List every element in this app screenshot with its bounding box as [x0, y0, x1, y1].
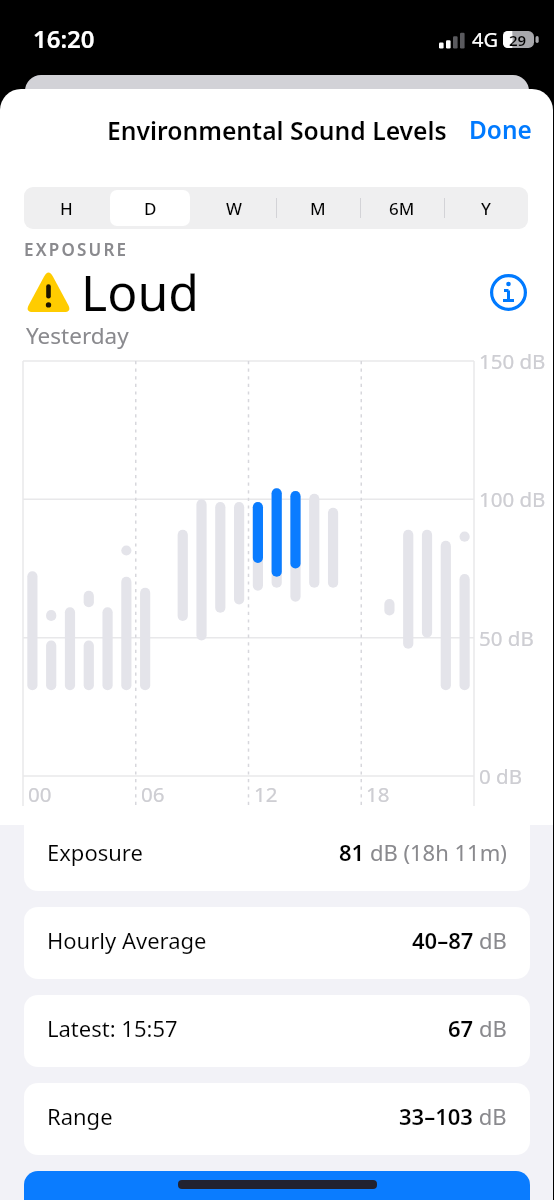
- staticText: Y: [481, 197, 491, 220]
- staticText: Hourly Average: [47, 925, 207, 955]
- staticText: EXPOSURE: [24, 238, 129, 261]
- button[interactable]: Latest: 15:57: [24, 995, 530, 1067]
- staticText: Loud: [81, 258, 200, 314]
- staticText: 06: [141, 780, 165, 808]
- staticText: 67 dB: [448, 1013, 507, 1043]
- staticText: 40–87 dB: [412, 925, 507, 955]
- button[interactable]: Information: [490, 274, 527, 311]
- staticText: Environmental Sound Levels: [107, 114, 447, 148]
- staticText: 4G: [472, 26, 498, 53]
- staticText: 12: [254, 780, 278, 808]
- staticText: Done: [469, 113, 532, 146]
- button[interactable]: Done: [469, 113, 532, 146]
- staticText: 18: [366, 780, 390, 808]
- staticText: D: [144, 197, 157, 220]
- staticText: M: [310, 197, 326, 220]
- button[interactable]: Y: [444, 187, 528, 229]
- staticText: Range: [47, 1101, 113, 1131]
- button[interactable]: D: [108, 187, 192, 229]
- staticText: Yesterday: [26, 320, 129, 351]
- button[interactable]: Show All Data: [24, 1171, 530, 1200]
- button[interactable]: Hourly Average: [24, 907, 530, 979]
- staticText: H: [60, 197, 73, 220]
- button[interactable]: M: [276, 187, 360, 229]
- staticText: 50 dB: [479, 624, 534, 652]
- button[interactable]: Range: [24, 1083, 530, 1155]
- staticText: Latest: 15:57: [47, 1013, 178, 1043]
- staticText: 100 dB: [479, 485, 546, 513]
- button[interactable]: Exposure: [24, 825, 530, 891]
- staticText: 33–103 dB: [399, 1101, 507, 1131]
- button[interactable]: 6M: [360, 187, 444, 229]
- staticText: 81 dB (18h 11m): [339, 837, 507, 867]
- button[interactable]: W: [192, 187, 276, 229]
- button[interactable]: H: [24, 187, 108, 229]
- staticText: 6M: [389, 197, 415, 220]
- staticText: 0 dB: [479, 762, 522, 790]
- staticText: 00: [28, 780, 52, 808]
- staticText: Exposure: [47, 837, 143, 867]
- staticText: 16:20: [33, 22, 95, 55]
- staticText: 150 dB: [479, 347, 546, 375]
- staticText: 29: [509, 30, 527, 47]
- staticText: W: [226, 197, 242, 220]
